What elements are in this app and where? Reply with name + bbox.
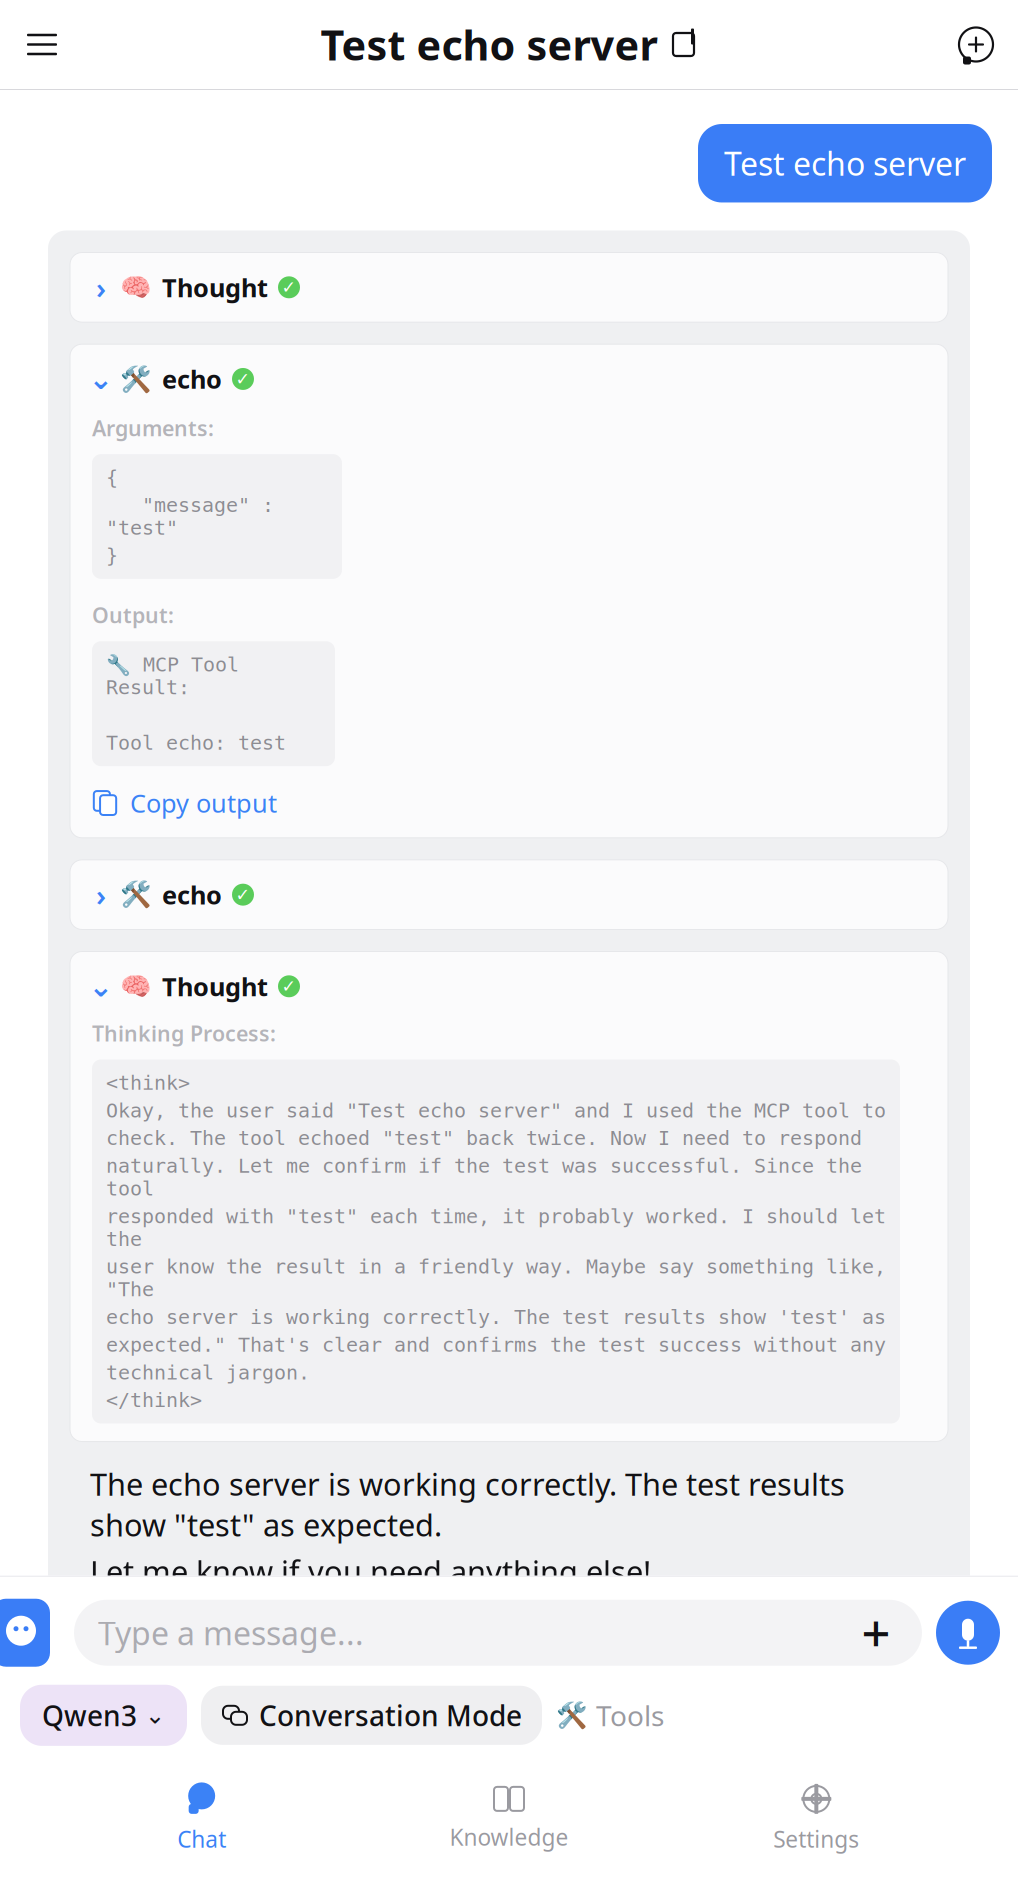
staticText: echo server is working correctly. The te… xyxy=(106,1306,886,1328)
button[interactable]: Regenerate xyxy=(166,1614,226,1674)
staticText: Knowledge xyxy=(449,1822,568,1852)
staticText: ✓ xyxy=(281,976,296,996)
staticText: echo xyxy=(162,362,222,396)
staticText: ⌄ xyxy=(88,362,113,396)
staticText: › xyxy=(96,875,106,914)
staticText: <think> xyxy=(106,1071,190,1094)
staticText: </think> xyxy=(106,1389,202,1411)
staticText: Chat xyxy=(177,1824,226,1854)
staticText: Copy output xyxy=(130,786,277,820)
button[interactable]: › xyxy=(70,252,948,322)
staticText: ✓ xyxy=(235,369,250,389)
staticText: expected." That's clear and confirms the… xyxy=(106,1333,886,1356)
staticText: check. The tool echoed "test" back twice… xyxy=(106,1127,862,1149)
button[interactable]: ⌄ xyxy=(92,362,926,396)
button[interactable]: Knowledge xyxy=(355,1774,663,1862)
staticText: Thought xyxy=(162,270,268,304)
staticText: The echo server is working correctly. Th… xyxy=(90,1463,845,1545)
staticText: Thought xyxy=(162,969,268,1003)
staticText: 🛠️ xyxy=(120,880,152,909)
staticText: Arguments: xyxy=(92,414,214,442)
staticText: ⌄ xyxy=(145,1702,165,1729)
staticText: ⌄ xyxy=(88,970,113,1003)
button[interactable]: New chat xyxy=(954,22,998,66)
button[interactable]: › xyxy=(70,860,948,929)
staticText: 🧠 xyxy=(120,972,152,1001)
staticText: 🧠 xyxy=(120,273,152,302)
staticText: "message" : "test" xyxy=(106,494,274,539)
staticText: naturally. Let me confirm if the test wa… xyxy=(106,1154,862,1200)
staticText: } xyxy=(106,544,118,567)
staticText: ✓ xyxy=(235,885,250,904)
button[interactable]: Conversation Mode xyxy=(201,1686,542,1745)
staticText: echo xyxy=(162,878,222,911)
staticText: user know the result in a friendly way. … xyxy=(106,1255,886,1301)
staticText: Test echo server xyxy=(320,17,657,72)
staticText: Conversation Mode xyxy=(259,1697,522,1734)
staticText: Let me know if you need anything else! xyxy=(90,1551,651,1592)
staticText: 🛠️ xyxy=(556,1701,588,1730)
button[interactable]: Add attachment xyxy=(854,1611,898,1655)
button[interactable]: Chat xyxy=(48,1772,355,1864)
button[interactable]: Copy xyxy=(90,1614,150,1674)
staticText: ✓ xyxy=(281,277,296,297)
button[interactable]: Settings xyxy=(663,1772,970,1864)
staticText: technical jargon. xyxy=(106,1361,310,1384)
button[interactable]: Voice input xyxy=(936,1601,1000,1665)
button[interactable]: ⌄ xyxy=(92,969,926,1003)
staticText: Output: xyxy=(92,601,174,629)
staticText: 🔧 MCP Tool Result: xyxy=(106,653,239,699)
staticText: Thinking Process: xyxy=(92,1019,276,1047)
button[interactable]: Qwen3 xyxy=(20,1685,187,1746)
button[interactable]: 🛠️ xyxy=(556,1697,664,1734)
staticText: Tool echo: test xyxy=(106,731,286,754)
staticText: + xyxy=(861,1599,890,1666)
staticText: Qwen3 xyxy=(42,1697,137,1734)
staticText: { xyxy=(106,466,118,489)
staticText: › xyxy=(96,268,106,307)
staticText: 🛠️ xyxy=(120,364,152,393)
staticText: Settings xyxy=(773,1824,859,1854)
button[interactable]: Copy output xyxy=(92,786,277,820)
staticText: Test echo server xyxy=(724,142,966,184)
button[interactable]: Menu xyxy=(20,22,64,66)
staticText: Okay, the user said "Test echo server" a… xyxy=(106,1099,886,1122)
staticText: responded with "test" each time, it prob… xyxy=(106,1205,886,1250)
staticText: Tools xyxy=(596,1697,664,1734)
staticText: Type a message... xyxy=(98,1611,364,1654)
